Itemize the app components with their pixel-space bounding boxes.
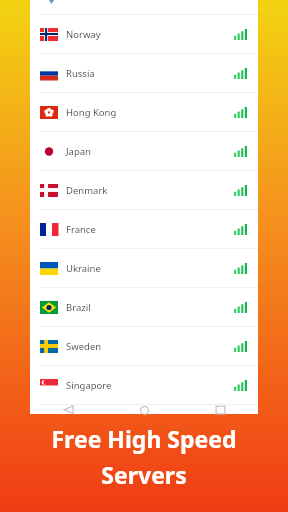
button[interactable]: Recent apps [182, 405, 258, 414]
button[interactable]: Japan [30, 132, 258, 171]
button[interactable]: Brazil [30, 288, 258, 327]
button[interactable]: France [30, 210, 258, 249]
button[interactable]: Denmark [30, 171, 258, 210]
button[interactable]: Norway [30, 15, 258, 54]
staticText: Servers [101, 459, 187, 490]
staticText: Ukraine [66, 262, 101, 275]
staticText: Russia [66, 67, 95, 80]
button[interactable]: Singapore [30, 366, 258, 405]
staticText: Hong Kong [66, 106, 117, 119]
staticText: Japan [66, 145, 91, 158]
button[interactable]: Home [106, 405, 182, 414]
staticText: Norway [66, 28, 101, 41]
button[interactable]: Back [30, 405, 106, 414]
button[interactable]: Sweden [30, 327, 258, 366]
staticText: Brazil [66, 301, 91, 314]
staticText: Denmark [66, 184, 108, 197]
staticText: Singapore [66, 379, 112, 392]
button[interactable]: Ukraine [30, 249, 258, 288]
staticText: France [66, 223, 96, 236]
staticText: Free High Speed [51, 423, 237, 454]
staticText: Sweden [66, 340, 102, 353]
button[interactable]: Hong Kong [30, 93, 258, 132]
button[interactable]: Russia [30, 54, 258, 93]
